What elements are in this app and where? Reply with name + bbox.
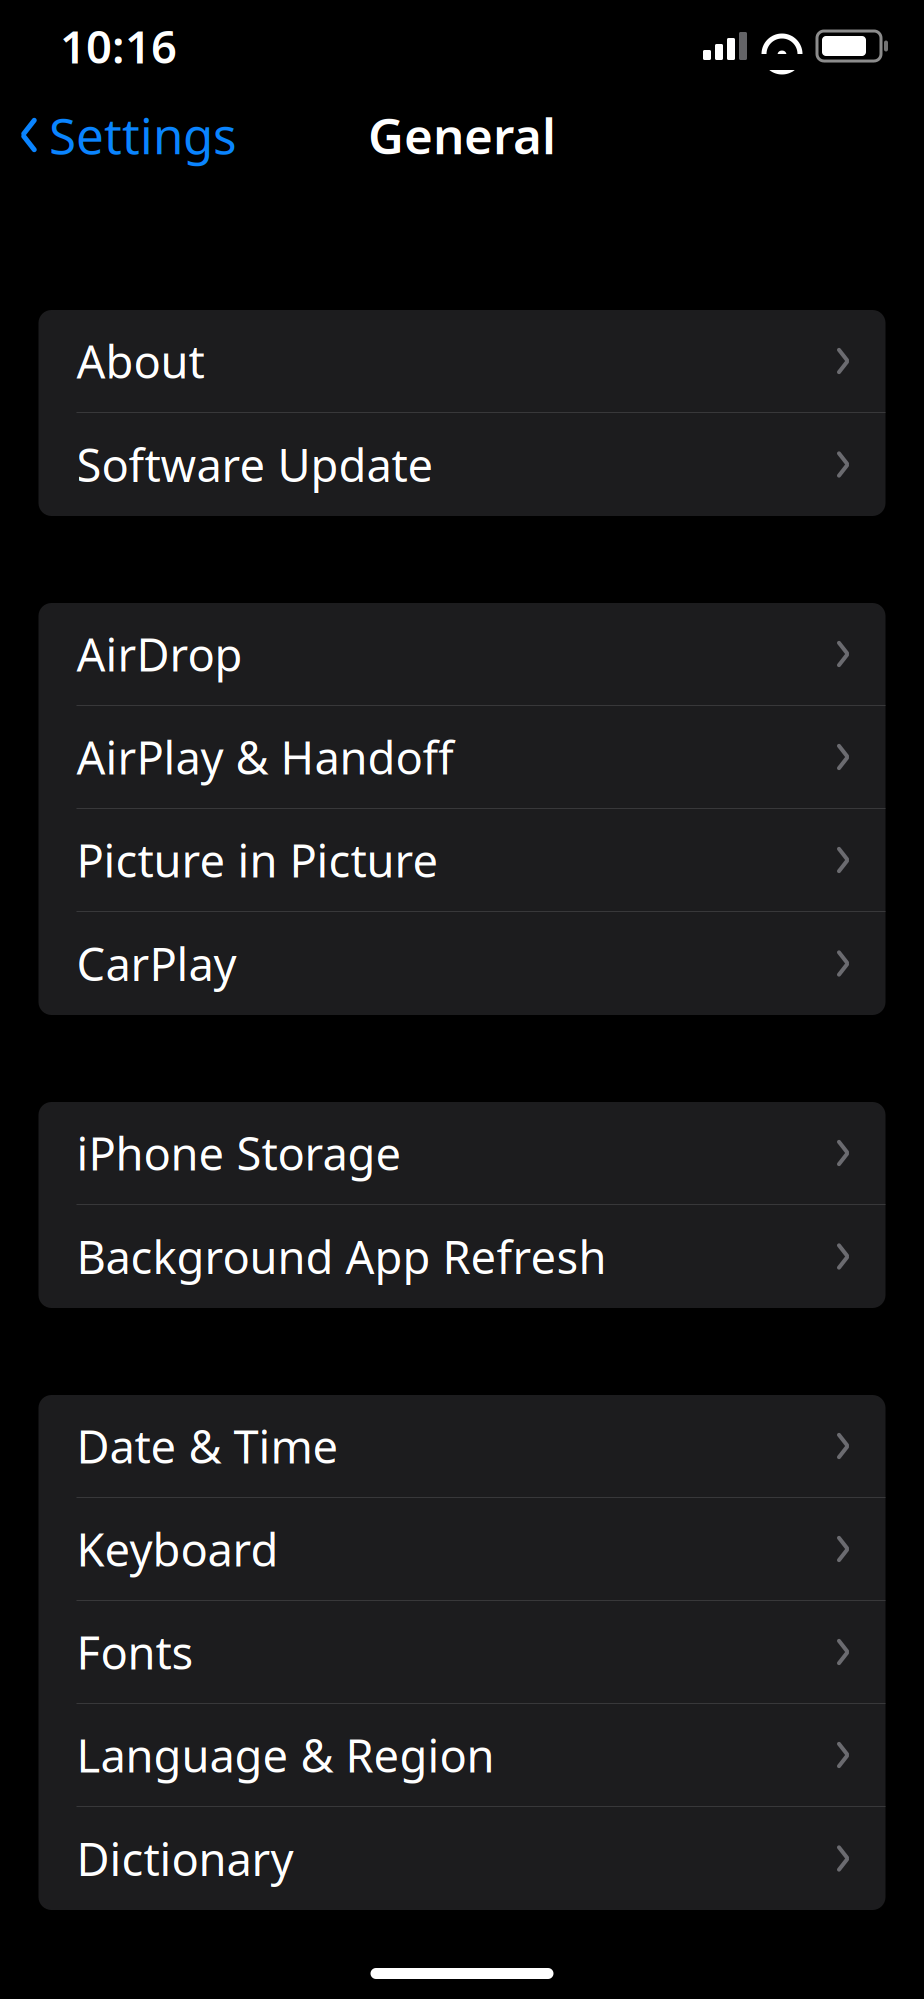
- button[interactable]: CarPlay: [38, 912, 885, 1015]
- button[interactable]: Software Update: [38, 413, 885, 516]
- button[interactable]: Keyboard: [38, 1498, 885, 1601]
- staticText: Date & Time: [76, 1416, 338, 1476]
- button[interactable]: Picture in Picture: [38, 809, 885, 912]
- staticText: Fonts: [76, 1622, 193, 1682]
- staticText: Keyboard: [76, 1519, 278, 1579]
- button[interactable]: AirPlay & Handoff: [38, 706, 885, 809]
- button[interactable]: Fonts: [38, 1601, 885, 1704]
- staticText: AirDrop: [76, 624, 242, 684]
- staticText: Software Update: [76, 434, 433, 495]
- button[interactable]: Settings: [0, 90, 251, 180]
- button[interactable]: Dictionary: [38, 1807, 885, 1910]
- staticText: iPhone Storage: [76, 1123, 401, 1183]
- button[interactable]: About: [38, 310, 885, 413]
- button[interactable]: AirDrop: [38, 603, 885, 706]
- button[interactable]: Background App Refresh: [38, 1205, 885, 1308]
- staticText: Settings: [49, 102, 237, 168]
- button[interactable]: Date & Time: [38, 1395, 885, 1498]
- staticText: About: [76, 331, 204, 391]
- staticText: Language & Region: [76, 1725, 494, 1785]
- staticText: Dictionary: [76, 1828, 293, 1889]
- staticText: Background App Refresh: [76, 1226, 606, 1287]
- staticText: AirPlay & Handoff: [76, 727, 453, 787]
- button[interactable]: Language & Region: [38, 1704, 885, 1807]
- button[interactable]: iPhone Storage: [38, 1102, 885, 1205]
- staticText: CarPlay: [76, 933, 236, 994]
- staticText: General: [368, 102, 556, 168]
- staticText: 10:16: [60, 16, 177, 76]
- staticText: Picture in Picture: [76, 830, 438, 890]
